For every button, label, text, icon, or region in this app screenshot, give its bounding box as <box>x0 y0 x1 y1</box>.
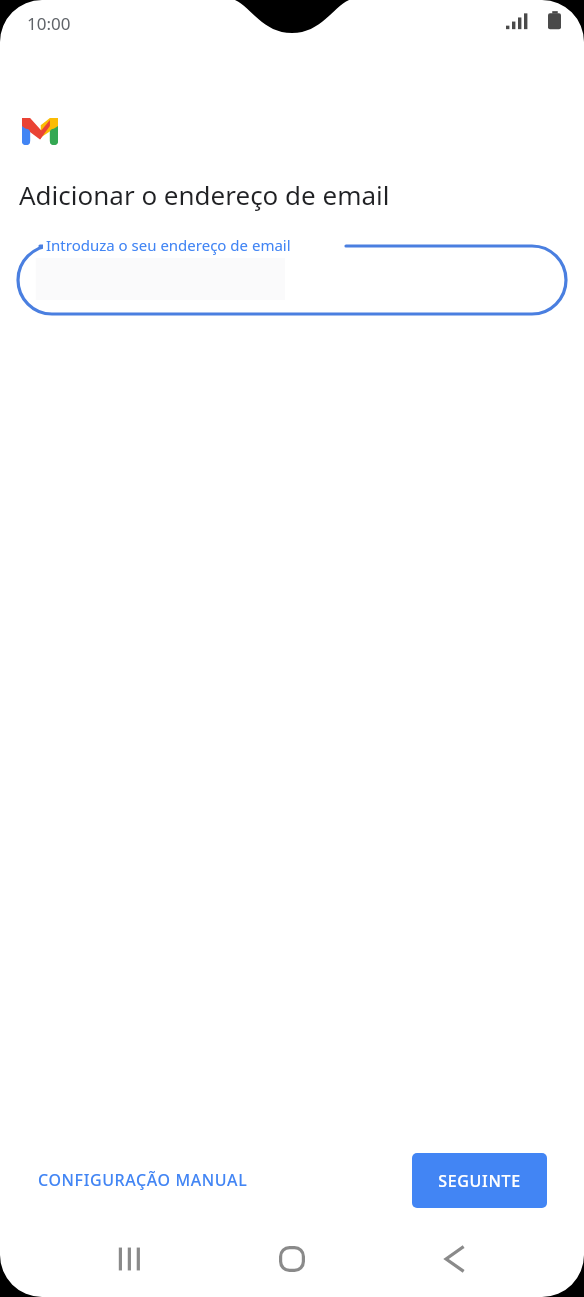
button[interactable]: CONFIGURAÇÃO MANUAL <box>20 1157 266 1203</box>
button[interactable]: SEGUINTE <box>412 1153 547 1208</box>
staticText: Introduza o seu endereço de email <box>46 235 291 255</box>
button[interactable]: Recent apps <box>96 1225 164 1293</box>
staticText: SEGUINTE <box>438 1170 521 1192</box>
button[interactable]: Home <box>258 1225 326 1293</box>
staticText: Adicionar o endereço de email <box>19 177 390 212</box>
staticText: CONFIGURAÇÃO MANUAL <box>38 1169 248 1191</box>
button[interactable]: Introduza o seu endereço de email <box>18 234 566 320</box>
button[interactable]: Back <box>420 1225 488 1293</box>
staticText: 10:00 <box>27 12 71 35</box>
